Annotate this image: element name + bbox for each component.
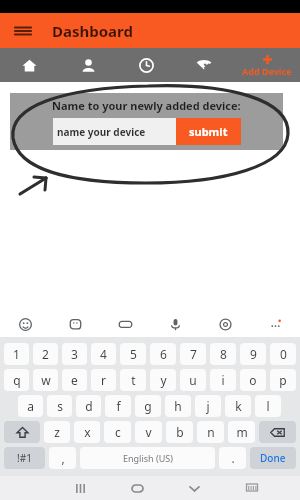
button[interactable]: g: [135, 395, 161, 417]
staticText: o: [249, 372, 257, 388]
staticText: x: [84, 424, 91, 440]
button[interactable]: 7: [180, 343, 206, 365]
button[interactable]: Recents: [52, 476, 109, 500]
staticText: 1: [13, 346, 20, 362]
button[interactable]: y: [150, 369, 176, 391]
staticText: Name to your newly added device:: [52, 98, 241, 113]
button[interactable]: History: [117, 48, 175, 82]
button[interactable]: p: [270, 369, 296, 391]
staticText: g: [144, 398, 152, 414]
staticText: b: [176, 424, 184, 440]
button[interactable]: j: [195, 395, 221, 417]
button[interactable]: q: [4, 369, 29, 391]
staticText: s: [57, 398, 63, 414]
staticText: name your device: [57, 125, 146, 139]
button[interactable]: Done: [250, 447, 296, 469]
staticText: submit: [189, 124, 228, 139]
button[interactable]: c: [104, 421, 131, 443]
button[interactable]: 5: [120, 343, 146, 365]
button[interactable]: Home: [109, 476, 166, 500]
staticText: n: [207, 424, 215, 440]
button[interactable]: English (US): [80, 447, 215, 469]
button[interactable]: Keyboard settings: [200, 311, 250, 337]
button[interactable]: 9: [240, 343, 266, 365]
button[interactable]: Open navigation menu: [8, 16, 38, 46]
button[interactable]: Emoji: [0, 311, 50, 337]
staticText: Done: [260, 451, 286, 465]
button[interactable]: Voice input: [150, 311, 200, 337]
button[interactable]: GIF: [100, 311, 150, 337]
button[interactable]: Home: [0, 48, 59, 82]
button[interactable]: l: [255, 395, 281, 417]
staticText: 0: [280, 346, 287, 362]
staticText: h: [174, 398, 182, 414]
button[interactable]: name your device: [53, 118, 176, 145]
button[interactable]: Hide keyboard: [223, 476, 280, 500]
staticText: 4: [100, 346, 107, 362]
button[interactable]: v: [135, 421, 162, 443]
staticText: u: [189, 372, 197, 388]
staticText: 5: [130, 346, 137, 362]
button[interactable]: i: [210, 369, 236, 391]
button[interactable]: f: [105, 395, 131, 417]
staticText: !#1: [17, 451, 32, 465]
button[interactable]: e: [62, 369, 87, 391]
staticText: e: [71, 372, 78, 388]
staticText: k: [235, 398, 242, 414]
staticText: a: [27, 398, 34, 414]
button[interactable]: !#1: [4, 447, 45, 469]
button[interactable]: h: [165, 395, 191, 417]
staticText: .: [231, 450, 235, 466]
button[interactable]: Profile: [59, 48, 117, 82]
button[interactable]: x: [74, 421, 100, 443]
staticText: 3: [71, 346, 78, 362]
staticText: z: [54, 424, 60, 440]
button[interactable]: 3: [62, 343, 87, 365]
button[interactable]: n: [197, 421, 224, 443]
button[interactable]: k: [225, 395, 251, 417]
button[interactable]: More options: [250, 311, 300, 337]
button[interactable]: Devices offline: [175, 48, 233, 82]
button[interactable]: Backspace: [259, 421, 296, 443]
button[interactable]: t: [120, 369, 146, 391]
button[interactable]: 1: [4, 343, 29, 365]
staticText: w: [41, 372, 51, 388]
staticText: l: [266, 398, 270, 414]
staticText: Add Device: [242, 65, 292, 77]
button[interactable]: 0: [270, 343, 296, 365]
button[interactable]: Add Device: [233, 48, 300, 82]
button[interactable]: s: [47, 395, 72, 417]
staticText: t: [131, 372, 136, 388]
button[interactable]: o: [240, 369, 266, 391]
button[interactable]: m: [228, 421, 255, 443]
button[interactable]: r: [91, 369, 116, 391]
staticText: d: [85, 398, 93, 414]
button[interactable]: 6: [150, 343, 176, 365]
button[interactable]: a: [18, 395, 43, 417]
staticText: 7: [190, 346, 197, 362]
button[interactable]: .: [219, 447, 246, 469]
button[interactable]: z: [44, 421, 70, 443]
button[interactable]: d: [76, 395, 101, 417]
staticText: 2: [42, 346, 49, 362]
staticText: y: [160, 372, 167, 388]
button[interactable]: b: [166, 421, 193, 443]
button[interactable]: Stickers: [50, 311, 100, 337]
staticText: m: [236, 424, 248, 440]
button[interactable]: 4: [91, 343, 116, 365]
staticText: English (US): [123, 452, 173, 464]
staticText: Dashboard: [52, 21, 133, 41]
staticText: 6: [160, 346, 167, 362]
staticText: 9: [250, 346, 257, 362]
button[interactable]: submit: [176, 118, 241, 145]
button[interactable]: 8: [210, 343, 236, 365]
button[interactable]: ,: [49, 447, 76, 469]
staticText: j: [206, 398, 210, 414]
button[interactable]: Shift: [4, 421, 40, 443]
staticText: ,: [61, 450, 65, 466]
button[interactable]: w: [33, 369, 58, 391]
staticText: p: [279, 372, 287, 388]
button[interactable]: Back: [166, 476, 223, 500]
button[interactable]: 2: [33, 343, 58, 365]
button[interactable]: u: [180, 369, 206, 391]
